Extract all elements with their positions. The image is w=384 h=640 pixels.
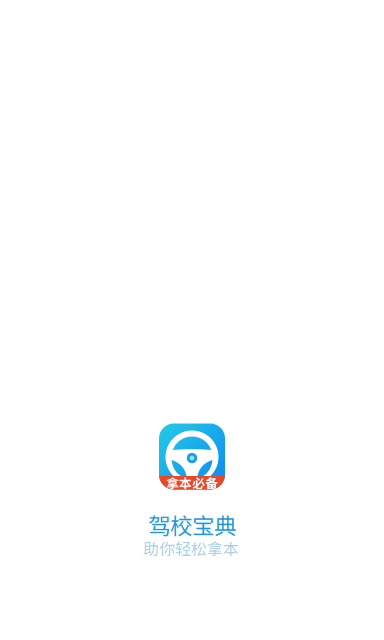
staticText: 助你轻松拿本: [143, 536, 239, 559]
staticText: 驾校宝典: [148, 508, 236, 541]
staticText: 拿本必备: [166, 473, 218, 492]
